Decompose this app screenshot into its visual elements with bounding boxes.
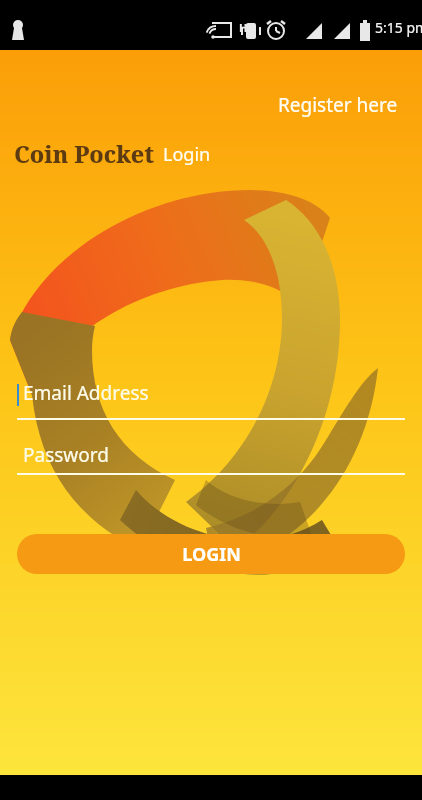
staticText: 5:15 pm bbox=[375, 18, 422, 37]
button[interactable]: Password bbox=[17, 435, 405, 475]
button[interactable]: LOGIN bbox=[17, 534, 405, 574]
staticText: LOGIN bbox=[182, 542, 241, 567]
staticText: Password bbox=[23, 442, 109, 468]
staticText: Coin Pocket bbox=[14, 138, 155, 169]
button[interactable]: Register here bbox=[274, 90, 402, 120]
staticText: Login bbox=[163, 142, 211, 167]
staticText: Email Address bbox=[23, 380, 149, 406]
staticText: Register here bbox=[278, 92, 398, 118]
button[interactable]: Email Address bbox=[17, 380, 405, 420]
staticText: H+ bbox=[239, 20, 254, 35]
